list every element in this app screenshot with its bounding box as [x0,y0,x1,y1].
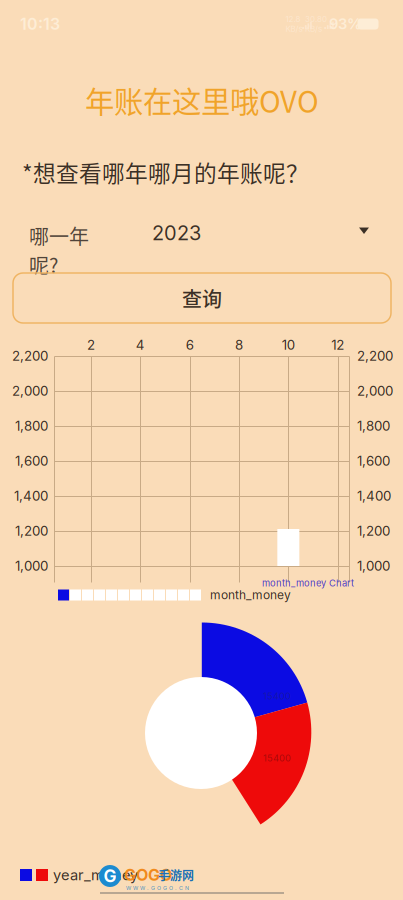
button[interactable]: 哪一年 呢? [0,207,403,273]
staticText: 93% [329,15,362,33]
staticText: GOGO [124,865,172,885]
staticText: 15400 [263,690,291,702]
staticText: 1,400 [357,488,391,504]
staticText: 15400 [263,752,291,764]
staticText: 哪一年 呢? [29,221,89,279]
staticText: 4 [136,337,145,353]
staticText: 2 [87,337,95,353]
staticText: 2023 [152,221,201,245]
staticText: 2,200 [357,348,393,364]
staticText: 6 [186,337,194,353]
staticText: month_money Chart [262,577,354,589]
staticText: 8 [235,337,243,353]
staticText: 10 [282,337,295,353]
staticText: month_money [210,588,291,602]
staticText: 1,000 [357,558,390,574]
staticText: year_money [53,866,138,884]
staticText: 1,600 [15,453,48,469]
staticText: 12 [331,337,344,353]
staticText: 手游网 [158,866,194,884]
staticText: 1,800 [15,418,48,434]
staticText: 1,800 [357,418,390,434]
staticText: 2,000 [357,383,393,399]
staticText: 1,200 [15,523,48,539]
staticText: W W W . G O G O . C N [126,885,189,891]
staticText: 查询 [182,283,222,312]
staticText: *想查看哪年哪月的年账呢？ [22,156,309,188]
staticText: 2,000 [12,383,48,399]
staticText: 1,600 [357,453,390,469]
staticText: 30.80 KB/s [305,14,327,34]
staticText: 12.8 KB/s [285,14,302,34]
staticText: 1,200 [357,523,390,539]
button[interactable]: 查询 [13,273,391,323]
staticText: 1,000 [15,558,48,574]
staticText: 10:13 [20,14,60,34]
staticText: 年账在这里哦OVO [85,79,319,121]
staticText: G [103,865,116,886]
staticText: 2,200 [12,348,48,364]
staticText: 1,400 [14,488,48,504]
